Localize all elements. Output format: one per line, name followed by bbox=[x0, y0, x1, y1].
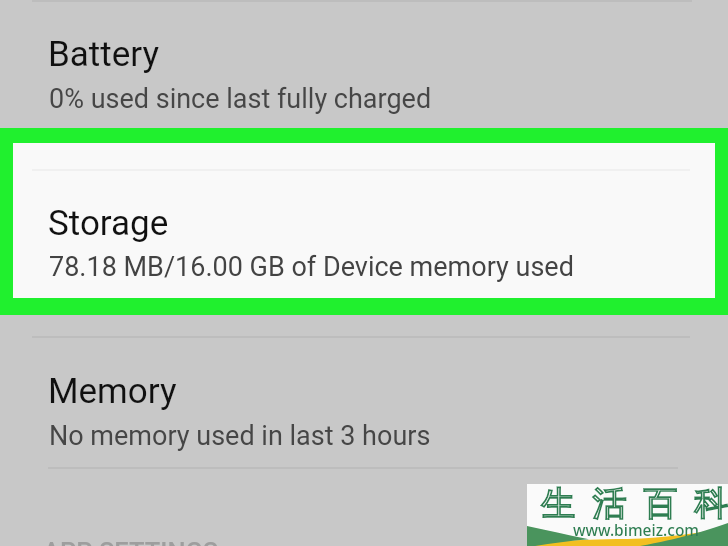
staticText: 生活百科 bbox=[533, 482, 728, 525]
button[interactable]: Battery bbox=[0, 2, 728, 128]
staticText: APP SETTINGS bbox=[43, 537, 219, 546]
staticText: 78.18 MB/16.00 GB of Device memory used bbox=[49, 251, 574, 283]
staticText: Battery bbox=[48, 34, 160, 75]
staticText: 0% used since last fully charged bbox=[49, 83, 432, 115]
button[interactable]: Memory bbox=[0, 338, 728, 466]
staticText: Memory bbox=[48, 371, 177, 412]
staticText: www.bimeiz.com bbox=[573, 519, 700, 540]
staticText: Storage bbox=[48, 203, 169, 244]
button[interactable]: Storage bbox=[13, 143, 715, 298]
staticText: No memory used in last 3 hours bbox=[49, 420, 431, 452]
